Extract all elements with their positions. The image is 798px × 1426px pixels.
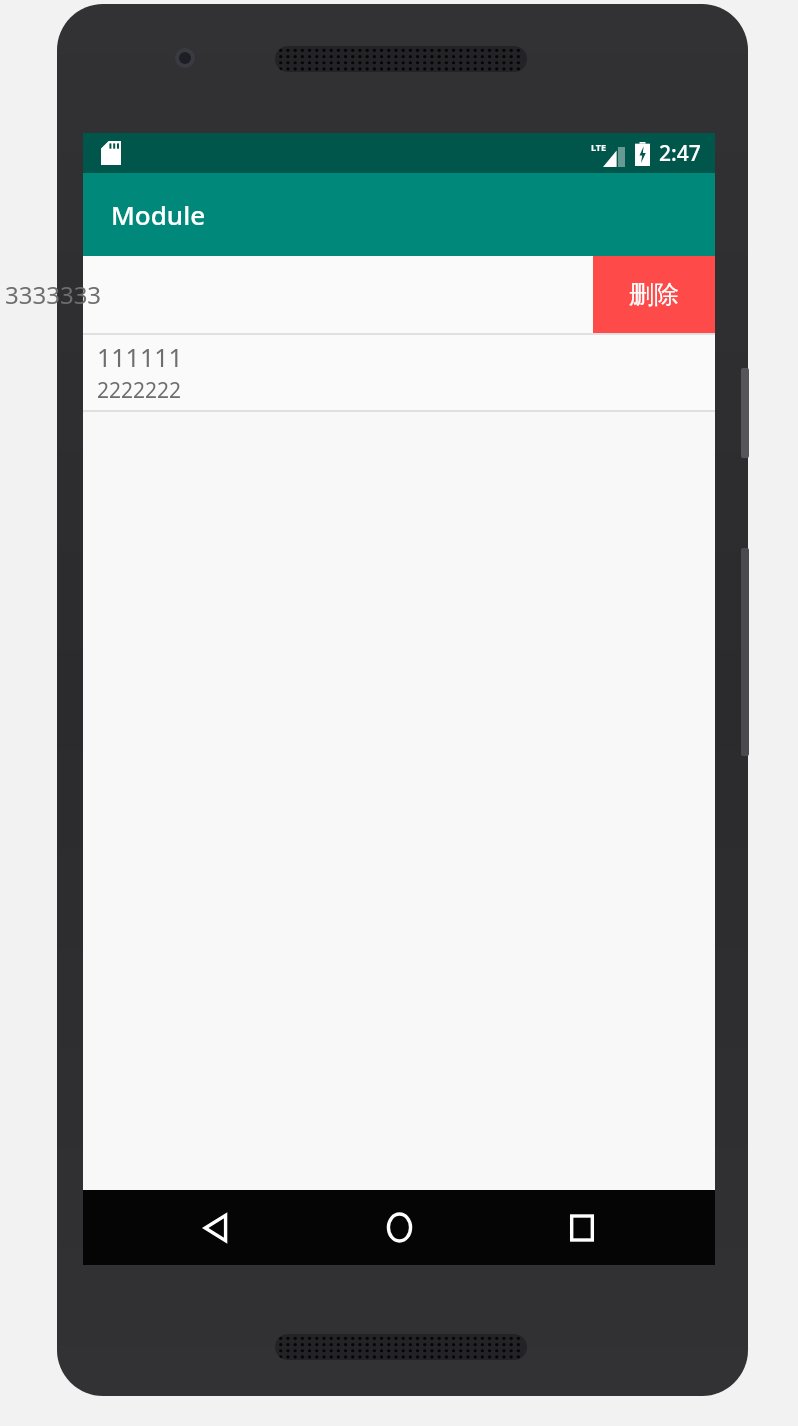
staticText: 111111 <box>97 340 183 374</box>
button[interactable]: 111111 <box>83 335 715 410</box>
button[interactable]: Home <box>349 1190 449 1265</box>
button[interactable]: Recent apps <box>532 1190 632 1265</box>
staticText: 删除 <box>629 279 679 310</box>
staticText: 3333333 <box>5 278 102 311</box>
button[interactable]: 删除 <box>593 256 715 333</box>
staticText: Module <box>111 197 206 232</box>
staticText: LTE <box>591 141 607 153</box>
staticText: 2222222 <box>97 376 182 405</box>
button[interactable]: 3333333 <box>83 256 715 333</box>
button[interactable]: Back <box>166 1190 266 1265</box>
staticText: 2:47 <box>659 139 701 168</box>
